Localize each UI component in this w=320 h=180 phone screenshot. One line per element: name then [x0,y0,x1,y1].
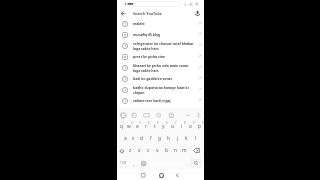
button[interactable]: m [180,145,189,156]
staticText: munafiq 45 blog [133,32,161,37]
staticText: bhaaari ke picha sida main sonar [133,63,189,68]
staticText: q [120,123,123,130]
staticText: i [181,123,183,130]
button[interactable]: x [135,145,144,156]
staticText: sahare tere karti nigaj [133,98,171,103]
button[interactable]: refrigerator ka charcar taraf bhabar [117,40,204,51]
staticText: a [124,135,127,142]
staticText: refrigerator ka charcar taraf bhabar [133,41,194,46]
staticText: w [127,123,131,130]
staticText: l [195,135,197,142]
staticText: r [145,123,147,130]
button[interactable]: Home [155,170,167,180]
staticText: z [129,147,132,154]
button[interactable]: g [155,133,164,144]
staticText: 9 [193,121,195,125]
button[interactable]: Back [171,170,183,180]
staticText: x [138,147,141,154]
button[interactable]: r [141,121,150,132]
staticText: 5 [157,121,159,125]
staticText: c [147,147,150,154]
button[interactable]: o [186,121,195,132]
staticText: Search YouTube [133,11,162,16]
button[interactable]: Back [117,8,129,19]
button[interactable]: i [177,121,186,132]
staticText: f [150,135,152,142]
button[interactable]: z [126,145,135,156]
button[interactable]: malahi [117,18,204,29]
staticText: g [158,135,161,142]
staticText: laga sakte hain [133,46,159,51]
button[interactable]: h [164,133,173,144]
button[interactable]: b [162,145,171,156]
button[interactable]: preet ke picha sine [117,51,204,62]
staticText: p [198,123,201,130]
button[interactable]: Emoji [138,157,148,169]
button[interactable]: t [150,121,159,132]
button[interactable]: e [133,121,141,132]
staticText: 4 [148,121,150,125]
button[interactable]: , [130,157,138,169]
staticText: 0 [202,121,204,125]
button[interactable]: Recents [137,170,149,180]
staticText: 1 [123,121,125,125]
button[interactable]: Backspace [189,145,204,156]
button[interactable]: y [159,121,168,132]
staticText: o [189,123,192,130]
button[interactable]: c [144,145,153,156]
staticText: m [182,147,187,154]
staticText: 2 [131,121,133,125]
staticText: h [167,135,170,142]
button[interactable]: d [137,133,146,144]
button[interactable]: f [146,133,155,144]
button[interactable]: badhe dupatta aa banaye baat ki [117,84,204,95]
button[interactable]: badi ke gadda ke sonar [117,73,204,84]
staticText: . [187,161,189,166]
button[interactable]: Search [191,159,201,167]
staticText: v [156,147,159,154]
staticText: ?123 [120,161,127,165]
staticText: 8 [184,121,186,125]
button[interactable]: sahare tere karti nigaj [117,95,204,106]
button[interactable]: Voice search [191,8,204,19]
staticText: d [140,135,143,142]
staticText: 3 [139,121,141,125]
staticText: 6 [166,121,168,125]
staticText: 7 [175,121,177,125]
staticText: n [174,147,177,154]
staticText: s [132,135,135,142]
button[interactable]: u [168,121,177,132]
staticText: j [177,135,179,142]
staticText: u [171,123,174,130]
staticText: e [136,123,139,130]
button[interactable]: l [191,133,200,144]
button[interactable]: k [182,133,191,144]
staticText: laga sakte hain [133,68,159,73]
button[interactable]: ?123 [117,157,130,169]
staticText: b [165,147,168,154]
button[interactable]: s [129,133,137,144]
button[interactable]: Shift [117,145,126,156]
staticText: preet ke picha sine [133,54,165,59]
button[interactable]: n [171,145,180,156]
staticText: t [154,123,156,130]
staticText: , [133,161,135,166]
staticText: malahi [133,21,145,26]
button[interactable]: q [117,121,125,132]
staticText: y [162,123,165,130]
staticText: k [185,135,188,142]
button[interactable]: a [121,133,129,144]
staticText: chipan [133,90,145,95]
button[interactable]: munafiq 45 blog [117,29,204,40]
button[interactable]: v [153,145,162,156]
button[interactable]: p [195,121,204,132]
button[interactable]: bhaaari ke picha sida main sonar [117,62,204,73]
button[interactable]: . [185,157,191,169]
staticText: badhe dupatta aa banaye baat ki [133,85,189,90]
staticText: badi ke gadda ke sonar [133,76,173,81]
button[interactable]: w [125,121,133,132]
button[interactable]: j [173,133,182,144]
